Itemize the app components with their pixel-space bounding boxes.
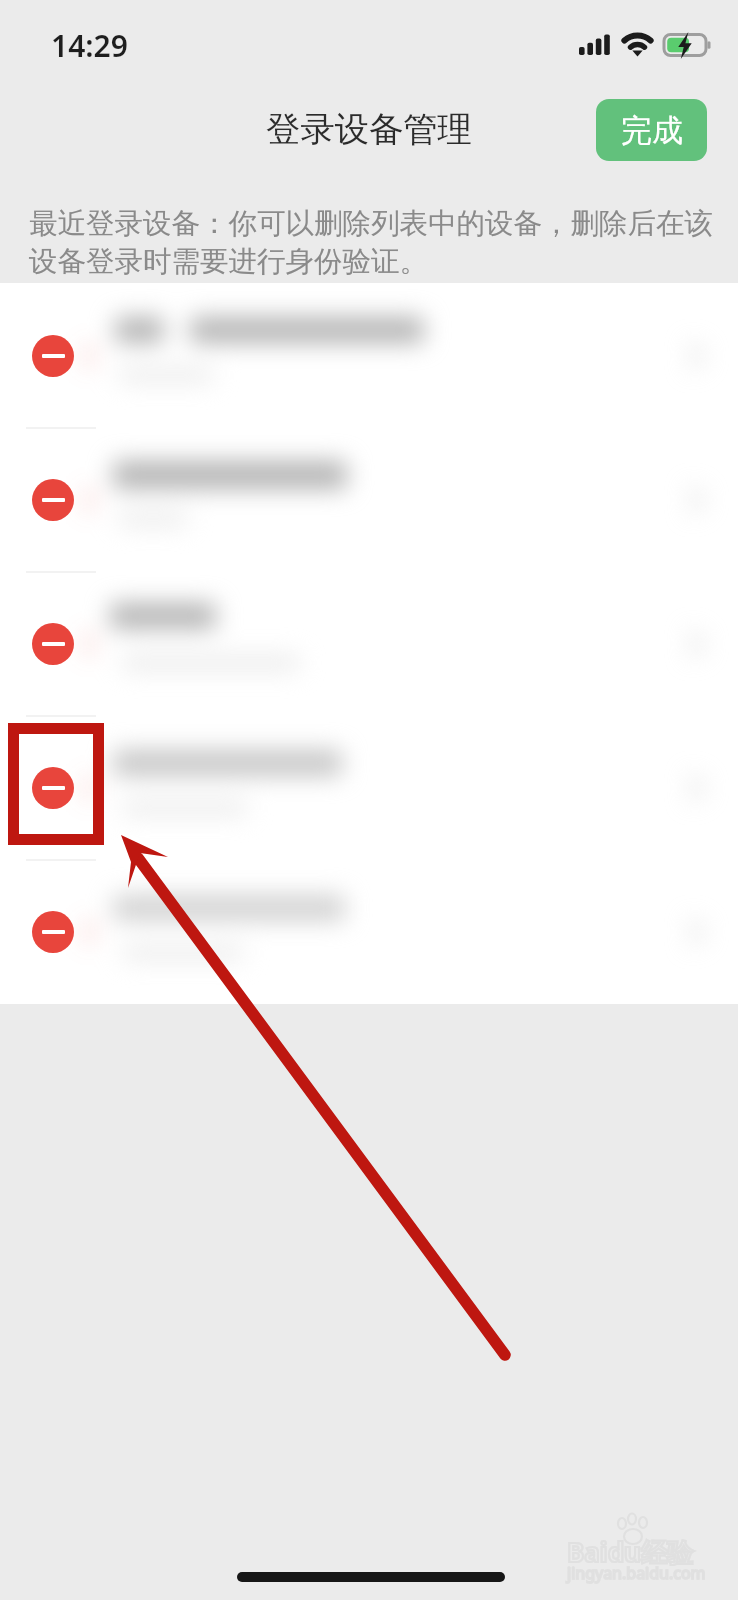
button[interactable]: Remove device — [32, 623, 74, 665]
button[interactable] — [0, 571, 738, 715]
button[interactable]: Remove device — [32, 335, 74, 377]
button[interactable]: Remove device — [32, 479, 74, 521]
staticText: 14:29 — [51, 25, 128, 66]
staticText: jingyan.baidu.com — [567, 1562, 706, 1584]
button[interactable] — [0, 283, 738, 427]
button[interactable]: 完成 — [596, 99, 707, 161]
staticText: 登录设备管理 — [266, 108, 472, 151]
staticText: 完成 — [621, 111, 683, 150]
staticText: 最近登录设备：你可以删除列表中的设备，删除后在该 设备登录时需要进行身份验证。 — [29, 206, 713, 279]
staticText: Baidu经验 — [567, 1534, 693, 1570]
button[interactable]: Remove device — [32, 767, 74, 809]
button[interactable] — [0, 859, 738, 1003]
button[interactable] — [0, 427, 738, 571]
button[interactable] — [0, 715, 738, 859]
button[interactable]: Remove device — [32, 911, 74, 953]
